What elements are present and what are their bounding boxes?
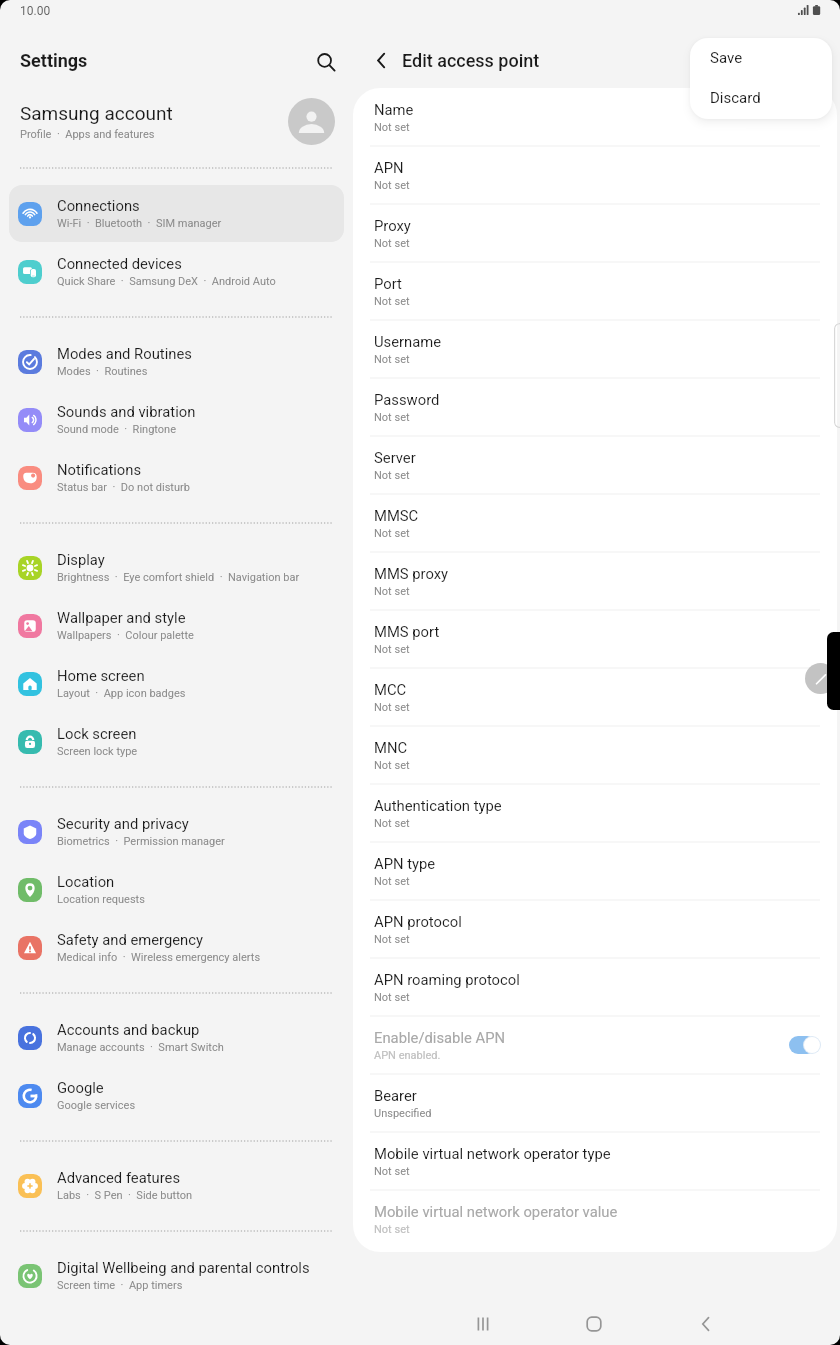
- button[interactable]: Recent apps: [429, 1301, 539, 1345]
- staticText: Home screen: [57, 667, 145, 684]
- button[interactable]: Digital Wellbeing and parental controls: [9, 1247, 344, 1304]
- button[interactable]: Connections: [9, 185, 344, 242]
- button[interactable]: APN: [353, 146, 837, 204]
- staticText: Display: [57, 551, 105, 568]
- staticText: Password: [374, 391, 440, 408]
- button[interactable]: Accounts and backup: [9, 1009, 344, 1066]
- button[interactable]: Connected devices: [9, 243, 344, 300]
- staticText: Digital Wellbeing and parental controls: [57, 1259, 310, 1276]
- staticText: Location: [57, 873, 115, 890]
- button[interactable]: Display: [9, 539, 344, 596]
- staticText: Not set: [374, 933, 410, 946]
- staticText: MMSC: [374, 507, 419, 524]
- staticText: APN protocol: [374, 913, 462, 930]
- staticText: Save: [710, 49, 743, 67]
- button[interactable]: Modes and Routines: [9, 333, 344, 390]
- button[interactable]: Wallpaper and style: [9, 597, 344, 654]
- staticText: MMS proxy: [374, 565, 449, 582]
- staticText: Location requests: [57, 893, 145, 906]
- staticText: Authentication type: [374, 797, 502, 814]
- button[interactable]: Sounds and vibration: [9, 391, 344, 448]
- button[interactable]: Advanced features: [9, 1157, 344, 1214]
- button[interactable]: Home screen: [9, 655, 344, 712]
- staticText: Advanced features: [57, 1169, 181, 1186]
- staticText: Lock screen: [57, 725, 137, 742]
- staticText: Connections: [57, 197, 140, 214]
- button[interactable]: Server: [353, 436, 837, 494]
- staticText: Not set: [374, 353, 410, 366]
- button[interactable]: MMS port: [353, 610, 837, 668]
- button[interactable]: Home: [539, 1301, 649, 1345]
- button[interactable]: Security and privacy: [9, 803, 344, 860]
- button[interactable]: Authentication type: [353, 784, 837, 842]
- staticText: MMS port: [374, 623, 440, 640]
- staticText: Screen time · App timers: [57, 1279, 183, 1292]
- button[interactable]: APN protocol: [353, 900, 837, 958]
- staticText: Not set: [374, 643, 410, 656]
- button[interactable]: Port: [353, 262, 837, 320]
- button[interactable]: Username: [353, 320, 837, 378]
- button[interactable]: Mobile virtual network operator value: [353, 1190, 837, 1248]
- button[interactable]: Name: [353, 88, 837, 146]
- button[interactable]: Notifications: [9, 449, 344, 506]
- staticText: Modes and Routines: [57, 345, 192, 362]
- staticText: Not set: [374, 1223, 410, 1236]
- button[interactable]: Back: [365, 44, 398, 77]
- staticText: Unspecified: [374, 1107, 432, 1120]
- staticText: Discard: [710, 89, 761, 107]
- button[interactable]: Search: [309, 45, 342, 78]
- staticText: Not set: [374, 991, 410, 1004]
- staticText: Google: [57, 1079, 104, 1096]
- staticText: Settings: [20, 50, 88, 71]
- button[interactable]: APN roaming protocol: [353, 958, 837, 1016]
- button[interactable]: Google: [9, 1067, 344, 1124]
- button[interactable]: Mobile virtual network operator type: [353, 1132, 837, 1190]
- button[interactable]: MNC: [353, 726, 837, 784]
- staticText: Not set: [374, 585, 410, 598]
- button[interactable]: Location: [9, 861, 344, 918]
- staticText: Not set: [374, 1165, 410, 1178]
- staticText: Not set: [374, 411, 410, 424]
- staticText: APN type: [374, 855, 436, 872]
- staticText: Username: [374, 333, 442, 350]
- button[interactable]: Proxy: [353, 204, 837, 262]
- button[interactable]: Back: [651, 1301, 761, 1345]
- button[interactable]: Password: [353, 378, 837, 436]
- staticText: MCC: [374, 681, 407, 698]
- staticText: Wi-Fi · Bluetooth · SIM manager: [57, 217, 222, 230]
- staticText: APN: [374, 159, 404, 176]
- button[interactable]: APN type: [353, 842, 837, 900]
- staticText: Enable/disable APN: [374, 1029, 506, 1046]
- staticText: Modes · Routines: [57, 365, 148, 378]
- staticText: Not set: [374, 469, 410, 482]
- button[interactable]: MMSC: [353, 494, 837, 552]
- staticText: Connected devices: [57, 255, 182, 272]
- button[interactable]: Save: [690, 38, 832, 78]
- staticText: MNC: [374, 739, 408, 756]
- staticText: Sound mode · Ringtone: [57, 423, 176, 436]
- button[interactable]: Enable APN toggle, on: [789, 1033, 820, 1057]
- button[interactable]: Bearer: [353, 1074, 837, 1132]
- staticText: Not set: [374, 759, 410, 772]
- staticText: Wallpaper and style: [57, 609, 186, 626]
- button[interactable]: Safety and emergency: [9, 919, 344, 976]
- button[interactable]: Lock screen: [9, 713, 344, 770]
- staticText: Server: [374, 449, 416, 466]
- staticText: Notifications: [57, 461, 142, 478]
- staticText: Status bar · Do not disturb: [57, 481, 190, 494]
- button[interactable]: Samsung account: [0, 96, 353, 146]
- staticText: Sounds and vibration: [57, 403, 196, 420]
- staticText: Safety and emergency: [57, 931, 204, 948]
- button[interactable]: Enable/disable APN: [353, 1016, 837, 1074]
- staticText: Samsung account: [20, 102, 173, 124]
- staticText: Screen lock type: [57, 745, 138, 758]
- button[interactable]: Edge panel handle: [805, 663, 836, 694]
- staticText: Not set: [374, 295, 410, 308]
- button[interactable]: MCC: [353, 668, 837, 726]
- staticText: Bearer: [374, 1087, 417, 1104]
- staticText: 10.00: [20, 4, 51, 18]
- button[interactable]: MMS proxy: [353, 552, 837, 610]
- button[interactable]: Discard: [690, 78, 832, 118]
- staticText: APN enabled.: [374, 1049, 441, 1062]
- staticText: Wallpapers · Colour palette: [57, 629, 194, 642]
